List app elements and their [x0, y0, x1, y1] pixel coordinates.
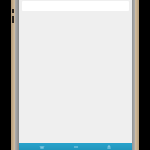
- button[interactable]: Home: [32, 143, 52, 150]
- button[interactable]: Profile: [99, 143, 119, 150]
- button[interactable]: Library: [66, 143, 86, 150]
